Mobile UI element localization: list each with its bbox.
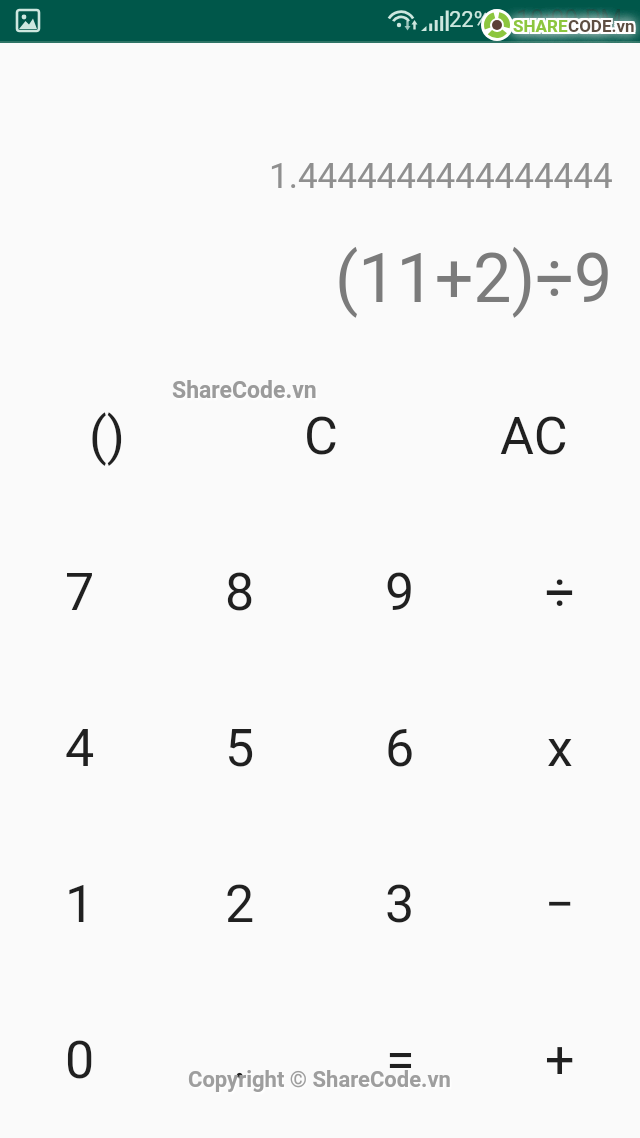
button[interactable]: C bbox=[214, 358, 427, 514]
button[interactable]: 2 bbox=[160, 826, 320, 982]
button[interactable]: 9 bbox=[320, 514, 480, 670]
staticText: SHARECODE.vn bbox=[513, 18, 635, 38]
staticText: SHARECODE.vn bbox=[513, 16, 635, 36]
button[interactable]: AC bbox=[427, 358, 640, 514]
button[interactable]: − bbox=[480, 826, 640, 982]
button[interactable]: = bbox=[320, 982, 480, 1138]
staticText: 22% bbox=[449, 7, 490, 33]
button[interactable]: 6 bbox=[320, 670, 480, 826]
staticText: SHARECODE.vn bbox=[513, 16, 635, 36]
staticText: 2 bbox=[225, 874, 255, 935]
button[interactable]: 5 bbox=[160, 670, 320, 826]
staticText: 10:09 PM bbox=[516, 5, 623, 34]
staticText: C bbox=[304, 406, 338, 467]
staticText: AC bbox=[500, 406, 568, 467]
staticText: + bbox=[545, 1030, 575, 1091]
staticText: Copyright © ShareCode.vn bbox=[188, 1067, 451, 1093]
staticText: SHARECODE.vn bbox=[515, 14, 637, 34]
staticText: CODE.vn bbox=[568, 16, 635, 36]
button[interactable]: 1 bbox=[0, 826, 160, 982]
staticText: 6 bbox=[385, 718, 415, 779]
staticText: SHARECODE.vn bbox=[511, 14, 633, 34]
button[interactable]: 0 bbox=[0, 982, 160, 1138]
button[interactable]: x bbox=[480, 670, 640, 826]
staticText: 5 bbox=[225, 718, 255, 779]
staticText: − bbox=[545, 874, 575, 935]
staticText: ÷ bbox=[545, 562, 575, 623]
staticText: 8 bbox=[225, 562, 255, 623]
staticText: SHARECODE.vn bbox=[513, 16, 635, 36]
staticText: = bbox=[386, 1030, 415, 1091]
staticText: (11+2)÷9 bbox=[335, 239, 613, 319]
staticText: ShareCode.vn bbox=[172, 377, 317, 404]
button[interactable]: () bbox=[0, 358, 214, 514]
staticText: SHARECODE.vn bbox=[511, 18, 633, 38]
staticText: 9 bbox=[385, 562, 415, 623]
staticText: SHARECODE.vn bbox=[513, 16, 635, 36]
staticText: SHARECODE.vn bbox=[513, 14, 635, 34]
button[interactable]: + bbox=[480, 982, 640, 1138]
staticText: SHARECODE.vn bbox=[511, 16, 633, 36]
button[interactable]: . bbox=[160, 982, 320, 1138]
staticText: SHARECODE.vn bbox=[515, 16, 637, 36]
staticText: 4 bbox=[65, 718, 95, 779]
button[interactable]: 8 bbox=[160, 514, 320, 670]
staticText: () bbox=[89, 406, 125, 467]
staticText: 7 bbox=[65, 562, 95, 623]
staticText: SHARECODE.vn bbox=[515, 18, 637, 38]
staticText: x bbox=[547, 718, 573, 779]
button[interactable]: 3 bbox=[320, 826, 480, 982]
staticText: . bbox=[233, 1030, 247, 1091]
staticText: 1.4444444444444444 bbox=[269, 156, 613, 197]
staticText: 1 bbox=[65, 874, 95, 935]
staticText: 0 bbox=[65, 1030, 95, 1091]
button[interactable]: ÷ bbox=[480, 514, 640, 670]
button[interactable]: 7 bbox=[0, 514, 160, 670]
staticText: 3 bbox=[385, 874, 415, 935]
staticText: SHARE bbox=[513, 16, 568, 36]
button[interactable]: 4 bbox=[0, 670, 160, 826]
